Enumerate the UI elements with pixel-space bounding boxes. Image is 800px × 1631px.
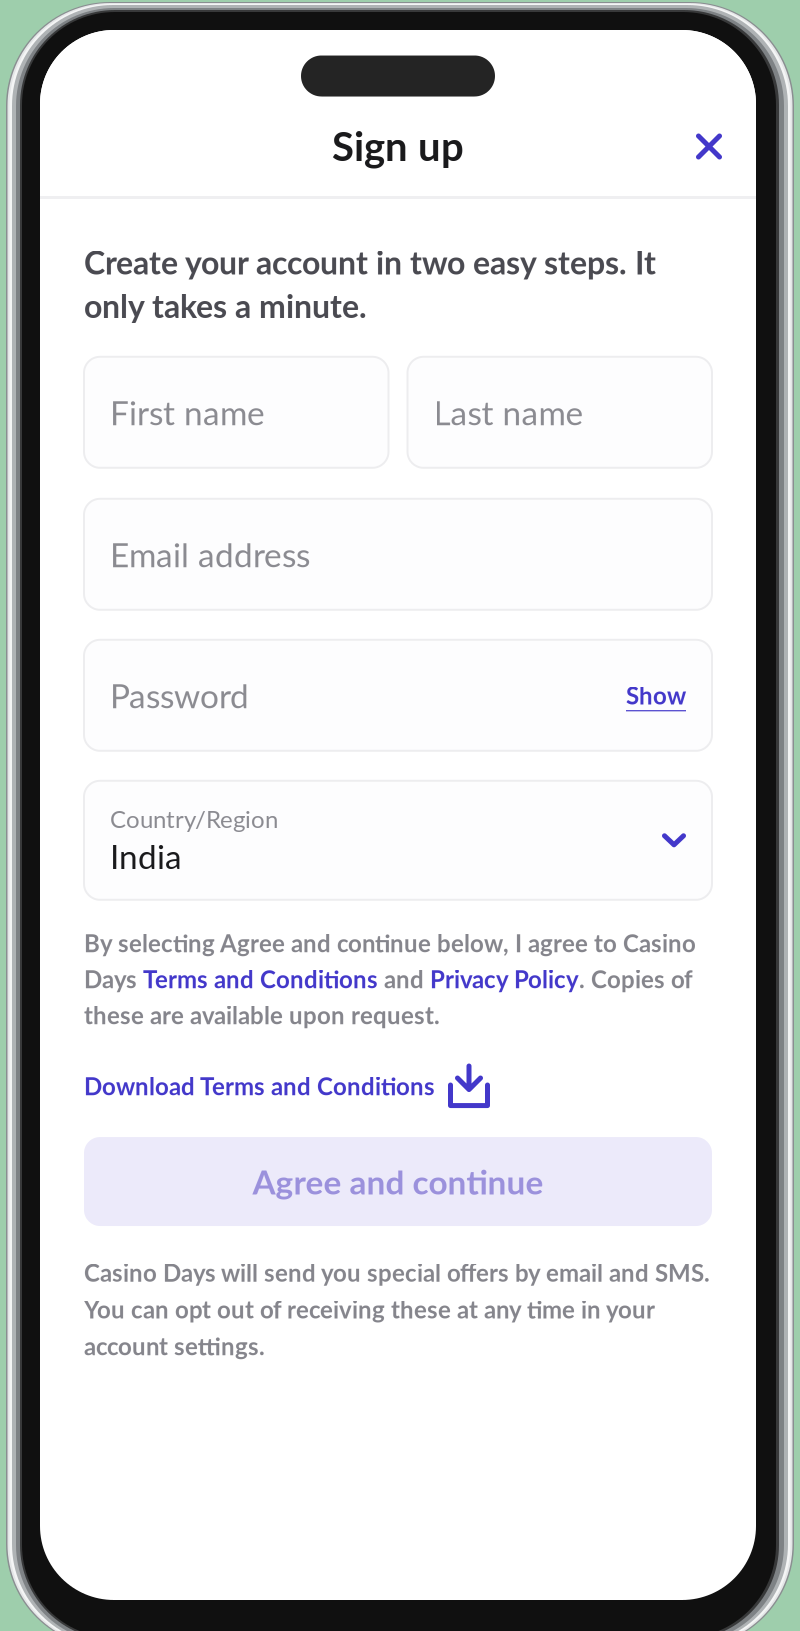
staticText: Password xyxy=(110,675,249,715)
staticText: Country/Region xyxy=(110,804,278,833)
staticText: Create your account in two easy steps. I… xyxy=(84,243,656,325)
staticText: Show xyxy=(626,681,686,710)
staticText: By selecting Agree and continue below, I… xyxy=(84,929,696,1029)
button[interactable]: Agree and continue xyxy=(84,1137,712,1226)
staticText: Email address xyxy=(110,534,310,574)
staticText: Download Terms and Conditions xyxy=(84,1072,435,1100)
staticText: First name xyxy=(110,392,265,432)
staticText: Last name xyxy=(433,392,583,432)
button[interactable]: Close xyxy=(678,115,740,177)
staticText: Sign up xyxy=(332,121,464,169)
staticText: Agree and continue xyxy=(252,1161,543,1201)
staticText: India xyxy=(110,836,182,876)
button[interactable]: Show xyxy=(626,681,686,710)
button[interactable]: Download Terms and Conditions xyxy=(84,1064,490,1108)
button[interactable]: Country/Region xyxy=(84,781,712,900)
staticText: Casino Days will send you special offers… xyxy=(84,1258,710,1360)
